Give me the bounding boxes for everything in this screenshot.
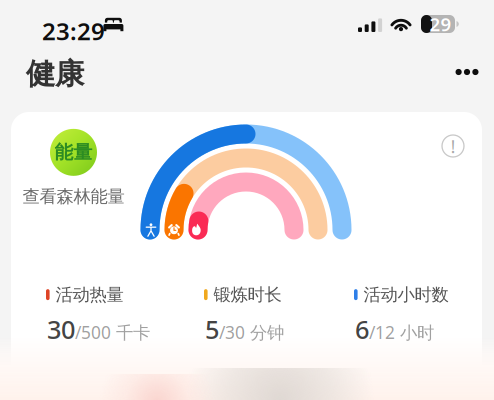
staticText: 健康 (26, 56, 84, 92)
staticText: 能量 (54, 141, 92, 164)
staticText: /12 小时 (369, 321, 434, 344)
button[interactable]: More options (444, 50, 490, 94)
staticText: 23:29 (42, 15, 105, 47)
staticText: /500 千卡 (75, 321, 150, 344)
staticText: 6 (355, 312, 369, 346)
button[interactable]: Info (436, 129, 470, 163)
button[interactable]: 能量 (12, 127, 135, 209)
staticText: 活动小时数 (364, 284, 449, 305)
staticText: 活动热量 (56, 284, 124, 305)
staticText: 29 (429, 12, 451, 36)
staticText: 查看森林能量 (22, 186, 124, 207)
staticText: /30 分钟 (219, 321, 284, 344)
staticText: 5 (205, 312, 219, 346)
staticText: ! (450, 134, 455, 158)
staticText: 锻炼时长 (214, 284, 282, 305)
staticText: 30 (47, 312, 75, 346)
